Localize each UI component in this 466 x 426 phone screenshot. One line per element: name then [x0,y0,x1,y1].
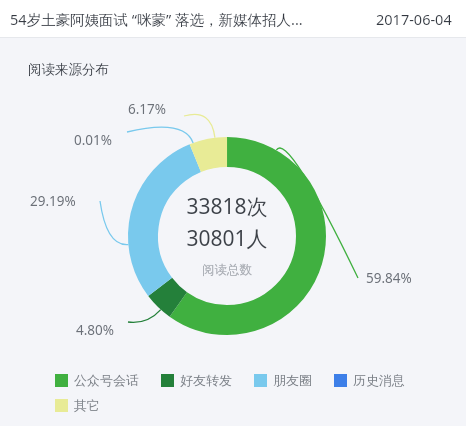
staticText: 59.84% [366,269,412,287]
staticText: 29.19% [30,192,76,210]
staticText: 公众号会话 [74,372,139,388]
button[interactable]: 其它 [55,397,100,413]
staticText: 6.17% [128,100,167,118]
staticText: 54岁土豪阿姨面试 “咪蒙” 落选，新媒体招人... [10,9,303,29]
button[interactable]: 历史消息 [334,372,405,388]
staticText: 4.80% [76,321,115,339]
staticText: 0.01% [74,131,113,149]
staticText: 好友转发 [180,372,232,388]
staticText: 2017-06-04 [376,9,452,29]
staticText: 其它 [74,397,100,413]
staticText: 33818次 [186,192,268,221]
staticText: 阅读来源分布 [28,61,109,78]
button[interactable]: 公众号会话 [55,372,139,388]
button[interactable]: 朋友圈 [254,372,312,388]
staticText: 30801人 [186,224,268,253]
button[interactable]: 54岁土豪阿姨面试 “咪蒙” 落选，新媒体招人... [0,0,466,37]
staticText: 阅读总数 [202,262,252,278]
button[interactable]: 好友转发 [161,372,232,388]
staticText: 朋友圈 [273,372,312,388]
staticText: 历史消息 [353,372,405,388]
